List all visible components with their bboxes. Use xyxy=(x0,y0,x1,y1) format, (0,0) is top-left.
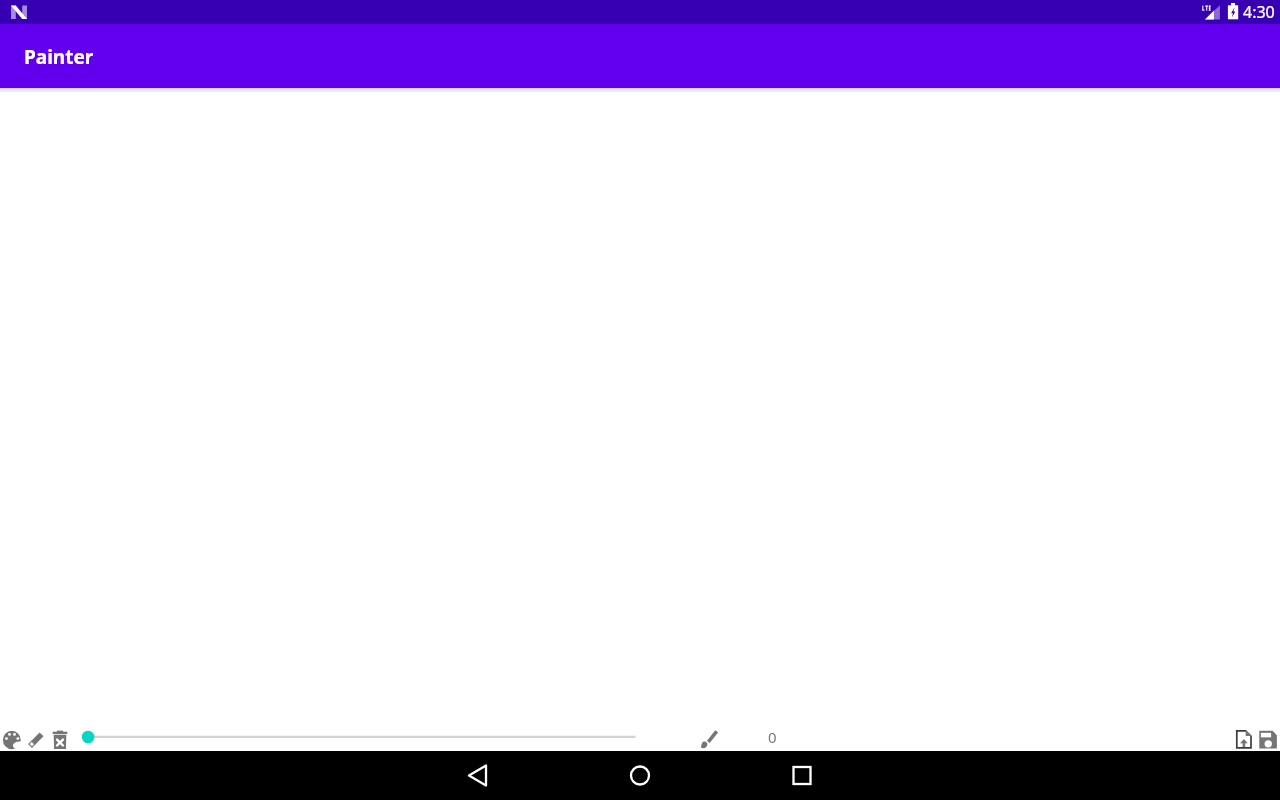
staticText: 0 xyxy=(768,727,777,747)
button[interactable]: Eraser xyxy=(24,726,48,754)
staticText: Painter xyxy=(24,44,94,70)
button[interactable]: Brush size xyxy=(80,726,644,754)
button[interactable]: Load image xyxy=(1232,726,1256,754)
button[interactable]: Clear drawing xyxy=(48,726,72,754)
button[interactable]: Save image xyxy=(1256,726,1280,754)
button[interactable]: Brush xyxy=(696,726,724,754)
button[interactable]: Recent apps xyxy=(778,751,826,800)
staticText: 4:30 xyxy=(1243,1,1275,23)
button[interactable]: Back xyxy=(454,751,502,800)
button[interactable]: Choose colour xyxy=(0,726,24,754)
button[interactable]: Home xyxy=(616,751,664,800)
